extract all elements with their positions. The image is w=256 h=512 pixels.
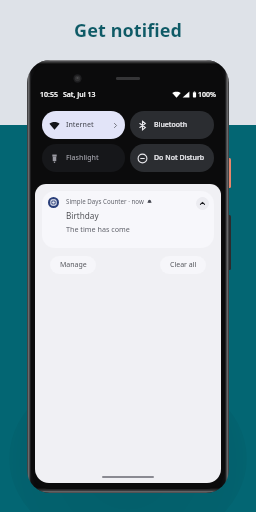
staticText: Birthday xyxy=(66,210,99,221)
button[interactable]: Manage xyxy=(50,256,96,274)
staticText: Simple Days Counter · now xyxy=(66,197,144,205)
staticText: Do Not Disturb xyxy=(154,153,205,163)
staticText: Bluetooth xyxy=(154,120,188,130)
button[interactable]: Clear all xyxy=(160,256,206,274)
staticText: Internet xyxy=(66,120,94,130)
staticText: The time has come xyxy=(66,224,130,234)
button[interactable]: Flashlight xyxy=(42,144,125,172)
staticText: Get notified xyxy=(74,18,183,43)
button[interactable]: Simple Days Counter · now xyxy=(42,191,214,248)
button[interactable]: Internet xyxy=(42,111,125,139)
button[interactable]: Bluetooth xyxy=(130,111,214,139)
staticText: Manage xyxy=(60,260,87,270)
staticText: Clear all xyxy=(170,260,197,270)
staticText: Sat, Jul 13 xyxy=(63,90,96,100)
staticText: 100% xyxy=(198,90,216,100)
button[interactable]: Collapse notification xyxy=(196,197,209,210)
button[interactable]: Do Not Disturb xyxy=(130,144,214,172)
staticText: 10:55 xyxy=(40,90,58,100)
staticText: Flashlight xyxy=(66,153,99,163)
